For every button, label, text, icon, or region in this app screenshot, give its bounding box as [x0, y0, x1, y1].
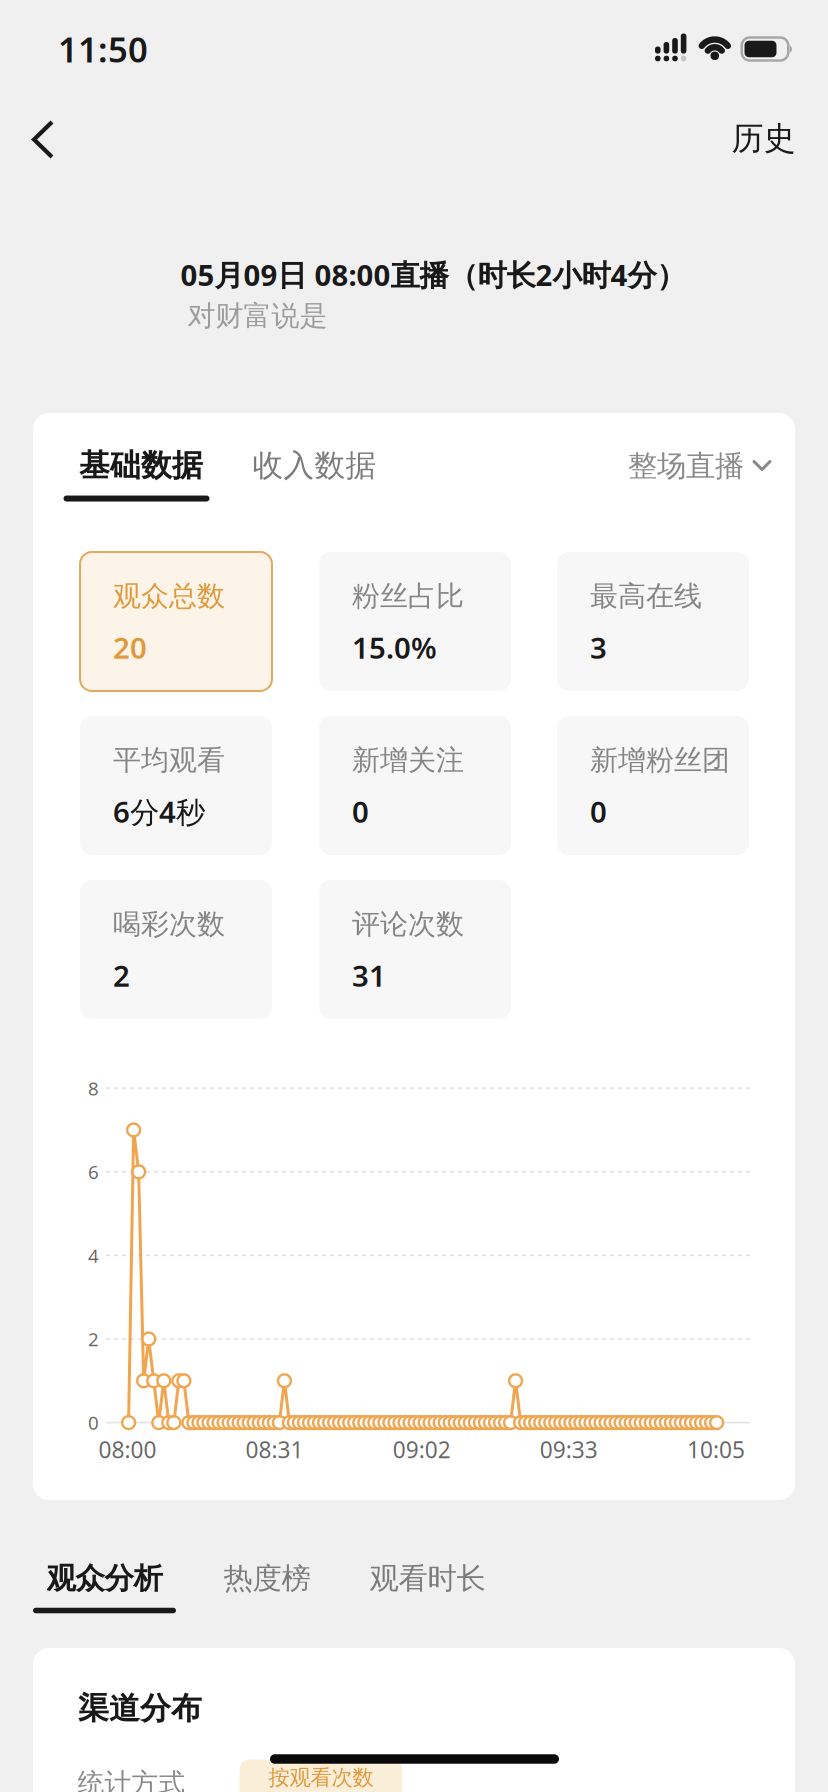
staticText: 20 [113, 628, 147, 667]
button[interactable]: 历史 [731, 119, 795, 158]
staticText: 8 [88, 1076, 99, 1101]
staticText: 新增粉丝团 [590, 743, 730, 777]
button[interactable]: 观众总数 [80, 552, 272, 691]
staticText: 15.0% [352, 628, 437, 667]
staticText: 观众分析 [46, 1560, 162, 1596]
button[interactable]: 喝彩次数 [80, 880, 272, 1019]
staticText: 2 [88, 1327, 99, 1351]
staticText: 2 [113, 956, 130, 995]
staticText: 收入数据 [252, 447, 376, 484]
staticText: 喝彩次数 [113, 907, 225, 941]
staticText: 0 [88, 1410, 99, 1435]
staticText: 最高在线 [590, 579, 702, 613]
staticText: 3 [590, 628, 607, 667]
button[interactable]: 观看时长 [369, 1560, 485, 1596]
staticText: 31 [352, 956, 386, 995]
staticText: 平均观看 [113, 743, 225, 777]
staticText: 09:02 [393, 1434, 451, 1464]
staticText: 粉丝占比 [352, 579, 464, 613]
button[interactable]: 新增关注 [319, 716, 511, 855]
staticText: 渠道分布 [78, 1690, 202, 1727]
button[interactable]: 平均观看 [80, 716, 272, 855]
button[interactable]: 新增粉丝团 [557, 716, 749, 855]
button[interactable]: 粉丝占比 [319, 552, 511, 691]
staticText: 新增关注 [352, 743, 464, 777]
button[interactable]: 评论次数 [319, 880, 511, 1019]
button[interactable]: 热度榜 [223, 1560, 310, 1596]
staticText: 热度榜 [223, 1560, 310, 1596]
button[interactable]: 整场直播 [628, 448, 772, 484]
button[interactable]: 最高在线 [557, 552, 749, 691]
staticText: 10:05 [687, 1434, 745, 1464]
staticText: 统计方式 [77, 1767, 185, 1792]
staticText: 整场直播 [628, 448, 744, 484]
staticText: 6分4秒 [113, 792, 205, 831]
staticText: 观看时长 [369, 1560, 485, 1596]
staticText: 08:00 [98, 1434, 156, 1464]
staticText: 0 [352, 792, 369, 831]
staticText: 08:31 [246, 1434, 304, 1464]
staticText: 评论次数 [352, 907, 464, 941]
staticText: 对财富说是 [187, 299, 327, 333]
staticText: 09:33 [540, 1434, 598, 1464]
staticText: 按观看次数 [268, 1764, 373, 1791]
button[interactable]: 按观看次数 [239, 1760, 402, 1792]
staticText: 0 [590, 792, 607, 831]
staticText: 11:50 [58, 26, 148, 72]
button[interactable]: Back [22, 95, 86, 184]
staticText: 观众总数 [113, 579, 225, 613]
staticText: 6 [88, 1159, 99, 1184]
button[interactable]: 收入数据 [252, 447, 376, 484]
button[interactable]: 观众分析 [46, 1560, 162, 1596]
staticText: 4 [88, 1243, 99, 1268]
button[interactable]: 基础数据 [79, 447, 203, 484]
staticText: 05月09日 08:00直播（时长2小时4分） [180, 255, 685, 294]
staticText: 历史 [731, 119, 795, 158]
staticText: 基础数据 [79, 447, 203, 484]
